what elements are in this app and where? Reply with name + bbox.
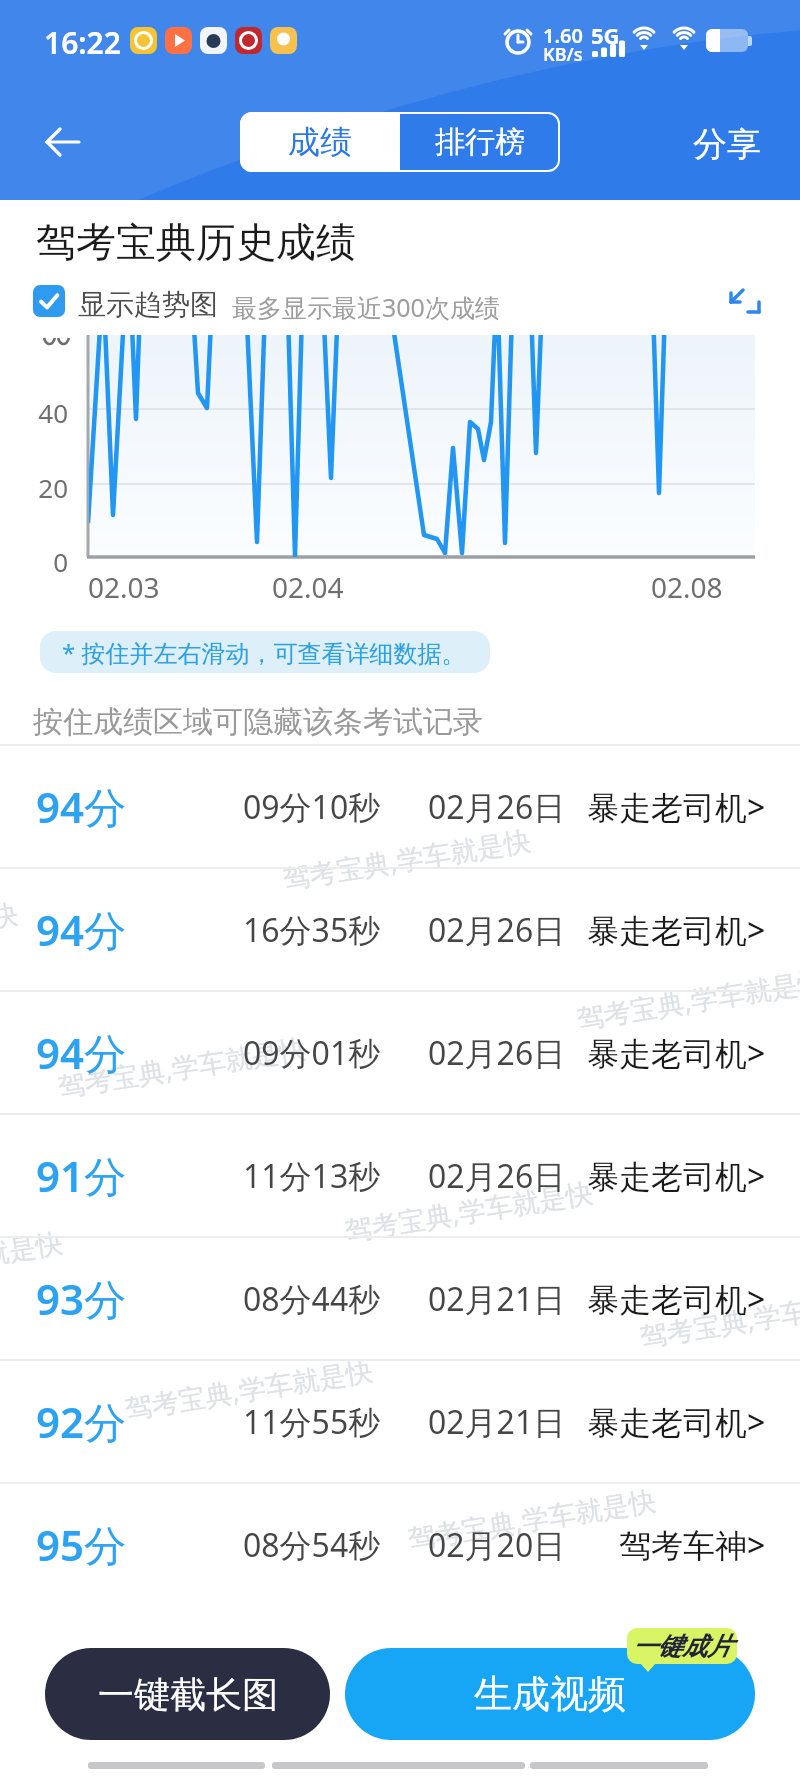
staticText: 驾考宝典,学车就是快 (55, 1029, 309, 1105)
staticText: 91分 (36, 1147, 127, 1204)
button[interactable]: 94分 (0, 869, 800, 990)
staticText: 按住成绩区域可隐藏该条考试记录 (33, 703, 483, 741)
staticText: 94分 (36, 1024, 127, 1081)
button[interactable]: 94分 (0, 992, 800, 1113)
staticText: 94分 (36, 901, 127, 958)
staticText: 暴走老司机> (587, 1400, 766, 1444)
staticText: 02月21日 (428, 1277, 566, 1321)
staticText: 02月26日 (428, 1031, 566, 1075)
staticText: * 按住并左右滑动，可查看详细数据。 (62, 636, 466, 669)
button[interactable]: 93分 (0, 1238, 800, 1359)
button[interactable]: 成绩 (240, 112, 400, 172)
staticText: 排行榜 (435, 123, 525, 161)
button[interactable]: 92分 (0, 1361, 800, 1482)
button[interactable] (33, 285, 65, 317)
button[interactable]: 分享 (693, 123, 761, 166)
staticText: 20 (34, 470, 68, 505)
button[interactable]: 一键截长图 (45, 1648, 330, 1740)
staticText: 92分 (36, 1393, 127, 1450)
staticText: 09分10秒 (243, 785, 381, 829)
staticText: 02月26日 (428, 785, 566, 829)
staticText: 94分 (36, 778, 127, 835)
staticText: 02月26日 (428, 908, 566, 952)
staticText: 驾考宝典历史成绩 (36, 217, 356, 267)
staticText: 09分01秒 (243, 1031, 381, 1075)
staticText: 一键成片 (632, 1631, 732, 1662)
staticText: 02月20日 (428, 1523, 566, 1567)
staticText: 暴走老司机> (587, 785, 766, 829)
staticText: 驾考宝典,学车就是快 (405, 1481, 659, 1557)
staticText: 驾考宝典,学车就是快 (574, 961, 800, 1037)
staticText: 11分55秒 (243, 1400, 381, 1444)
button[interactable] (45, 127, 81, 157)
button[interactable]: 95分 (0, 1484, 800, 1605)
staticText: 驾考宝典,学车就是快 (342, 1173, 596, 1249)
staticText: 暴走老司机> (587, 1277, 766, 1321)
staticText: 16分35秒 (243, 908, 381, 952)
staticText: 显示趋势图 (78, 287, 218, 322)
button[interactable]: 生成视频 (345, 1648, 755, 1740)
staticText: 驾考宝典,学车就是快 (280, 821, 534, 897)
staticText: 16:22 (44, 22, 121, 63)
staticText: 02月21日 (428, 1400, 566, 1444)
staticText: 5G (591, 20, 620, 50)
staticText: 02月26日 (428, 1154, 566, 1198)
staticText: 暴走老司机> (587, 1154, 766, 1198)
staticText: 最多显示最近300次成绩 (232, 290, 500, 324)
button[interactable]: 排行榜 (400, 112, 560, 172)
staticText: 02.08 (651, 568, 723, 606)
staticText: 驾考宝典,学车就是快 (0, 894, 21, 970)
staticText: 93分 (36, 1270, 127, 1327)
button[interactable] (728, 284, 762, 318)
staticText: 驾考宝典,学车就是快 (637, 1279, 800, 1355)
button[interactable]: 94分 (0, 746, 800, 867)
staticText: 1.60 (543, 22, 583, 49)
staticText: 0 (34, 544, 68, 579)
button[interactable]: 91分 (0, 1115, 800, 1236)
staticText: 02.03 (88, 568, 160, 606)
staticText: 分享 (693, 123, 761, 166)
staticText: 驾考宝典,学车就是快 (122, 1351, 376, 1427)
staticText: 11分13秒 (243, 1154, 381, 1198)
staticText: 生成视频 (474, 1670, 626, 1718)
staticText: 02.04 (272, 568, 344, 606)
staticText: 驾考宝典,学车就是快 (0, 1223, 66, 1299)
staticText: 暴走老司机> (587, 1031, 766, 1075)
staticText: 暴走老司机> (587, 908, 766, 952)
staticText: 95分 (36, 1516, 127, 1573)
button[interactable]: * 按住并左右滑动，可查看详细数据。 (40, 631, 490, 673)
staticText: 08分54秒 (243, 1523, 381, 1567)
staticText: 40 (34, 395, 68, 430)
staticText: 一键截长图 (98, 1672, 278, 1717)
staticText: 08分44秒 (243, 1277, 381, 1321)
staticText: KB/s (543, 42, 583, 67)
staticText: 驾考车神> (619, 1523, 766, 1567)
staticText: 成绩 (288, 122, 352, 162)
